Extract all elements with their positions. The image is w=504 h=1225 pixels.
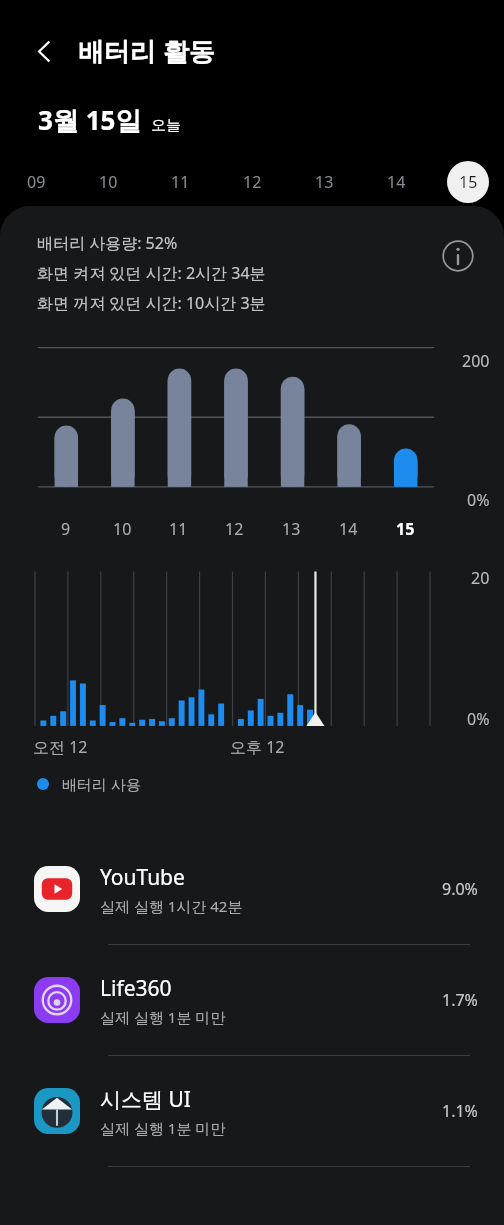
staticText: 9.0% xyxy=(442,878,478,900)
staticText: 오전 12 xyxy=(33,736,88,758)
button[interactable]: 14 xyxy=(360,158,432,206)
staticText: 15 xyxy=(459,171,478,193)
staticText: 12 xyxy=(225,518,244,540)
staticText: 10 xyxy=(99,171,118,193)
staticText: 15 xyxy=(396,518,415,540)
staticText: 12 xyxy=(243,171,262,193)
staticText: 10 xyxy=(113,518,132,540)
staticText: 13 xyxy=(315,171,334,193)
staticText: 14 xyxy=(339,518,358,540)
staticText: 시스템 UI xyxy=(100,1085,191,1114)
button[interactable]: 15 xyxy=(432,158,504,206)
staticText: 1.1% xyxy=(442,1100,478,1122)
staticText: 20 xyxy=(471,567,490,589)
staticText: Life360 xyxy=(100,974,172,1003)
staticText: 실제 실행 1분 미만 xyxy=(100,1007,226,1027)
staticText: 3월 15일 xyxy=(38,102,142,138)
staticText: 0% xyxy=(467,489,490,511)
staticText: 14 xyxy=(387,171,406,193)
staticText: 오후 12 xyxy=(230,736,285,758)
staticText: 화면 꺼져 있던 시간: 10시간 3분 xyxy=(37,292,266,314)
button[interactable]: 11 xyxy=(144,158,216,206)
button[interactable]: 13 xyxy=(288,158,360,206)
staticText: 200 xyxy=(462,350,490,372)
staticText: 실제 실행 1시간 42분 xyxy=(100,896,243,916)
staticText: 실제 실행 1분 미만 xyxy=(100,1118,226,1138)
staticText: 1.7% xyxy=(442,989,478,1011)
button[interactable]: 09 xyxy=(0,158,72,206)
staticText: 오늘 xyxy=(151,116,181,135)
staticText: 09 xyxy=(27,171,46,193)
button[interactable]: Life360 xyxy=(0,945,504,1055)
staticText: 배터리 사용 xyxy=(62,774,141,794)
staticText: 배터리 활동 xyxy=(78,33,215,69)
staticText: 화면 켜져 있던 시간: 2시간 34분 xyxy=(37,262,266,284)
staticText: 13 xyxy=(282,518,301,540)
button[interactable]: Back xyxy=(20,27,68,75)
button[interactable]: YouTube xyxy=(0,834,504,944)
staticText: YouTube xyxy=(100,863,185,892)
staticText: 11 xyxy=(171,171,190,193)
button[interactable]: 10 xyxy=(72,158,144,206)
button[interactable]: 12 xyxy=(216,158,288,206)
button[interactable]: 시스템 UI xyxy=(0,1056,504,1166)
staticText: 0% xyxy=(467,708,490,730)
staticText: 9 xyxy=(61,518,71,540)
button[interactable]: 정보 xyxy=(436,234,480,278)
staticText: 배터리 사용량: 52% xyxy=(37,232,178,254)
staticText: 11 xyxy=(169,518,188,540)
